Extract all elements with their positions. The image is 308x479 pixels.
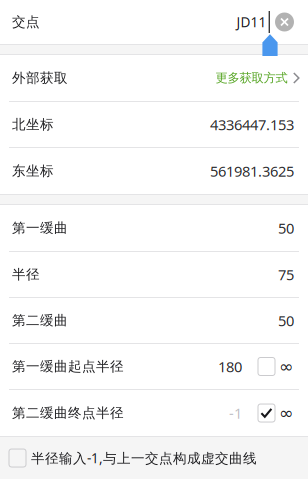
- staticText: 50: [278, 310, 294, 330]
- staticText: 半径输入-1,与上一交点构成虚交曲线: [31, 449, 257, 467]
- staticText: ∞: [279, 403, 293, 423]
- button[interactable]: Infinite radius: [258, 390, 308, 436]
- staticText: 50: [278, 218, 294, 238]
- button[interactable]: 第一缓曲: [0, 205, 308, 252]
- staticText: -1: [229, 403, 242, 423]
- button[interactable]: 东坐标: [0, 148, 308, 194]
- button[interactable]: 北坐标: [0, 102, 308, 148]
- staticText: ∞: [279, 356, 293, 377]
- button[interactable]: 第二缓曲终点半径: [0, 390, 242, 436]
- button[interactable]: Clear text: [275, 12, 294, 31]
- staticText: 北坐标: [12, 116, 54, 133]
- staticText: 东坐标: [12, 162, 54, 179]
- button[interactable]: 更多获取方式: [216, 55, 308, 101]
- button[interactable]: Infinite radius: [258, 344, 308, 389]
- button[interactable]: 第二缓曲: [0, 298, 308, 344]
- staticText: 第二缓曲终点半径: [12, 404, 124, 421]
- staticText: 半径: [12, 266, 40, 283]
- staticText: 第一缓曲起点半径: [12, 358, 124, 375]
- staticText: 561981.3625: [210, 161, 294, 181]
- button[interactable]: 半径输入-1,与上一交点构成虚交曲线: [0, 437, 308, 479]
- staticText: 75: [278, 264, 294, 284]
- staticText: 4336447.153: [210, 114, 294, 134]
- button[interactable]: 第一缓曲起点半径: [0, 344, 242, 389]
- staticText: 180: [218, 356, 242, 376]
- staticText: 第一缓曲: [12, 219, 68, 236]
- button[interactable]: 半径: [0, 252, 308, 298]
- staticText: 第二缓曲: [12, 312, 68, 329]
- staticText: JD11: [237, 13, 267, 31]
- staticText: 外部获取: [12, 69, 68, 86]
- staticText: 交点: [12, 13, 40, 30]
- staticText: 更多获取方式: [216, 70, 288, 86]
